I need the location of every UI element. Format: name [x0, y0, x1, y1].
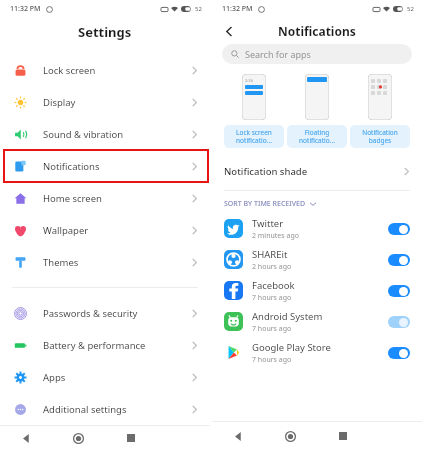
button[interactable]: Floating notificatio... [287, 74, 347, 148]
button[interactable]: Home screen [0, 182, 210, 214]
staticText: Facebook [252, 279, 295, 292]
button[interactable]: Additional settings [0, 393, 210, 425]
button[interactable]: Search for apps [222, 44, 412, 64]
staticText: Themes [43, 256, 79, 269]
button[interactable] [388, 316, 410, 328]
button[interactable]: Themes [0, 246, 210, 278]
staticText: 11:32 PM [10, 4, 41, 14]
button[interactable]: Lock screen [0, 54, 210, 86]
staticText: 52 [407, 5, 414, 13]
button[interactable]: Twitter [212, 213, 422, 244]
staticText: Display [43, 96, 76, 109]
staticText: Additional settings [43, 403, 127, 416]
staticText: SHAREit [252, 248, 288, 261]
staticText: Search for apps [245, 48, 311, 60]
staticText: Sound & vibration [43, 128, 124, 141]
staticText: Notifications [278, 23, 356, 39]
staticText: Google Play Store [252, 341, 331, 354]
button[interactable]: 2:36 [224, 74, 284, 148]
staticText: Notification shade [224, 165, 308, 178]
staticText: Floating notificatio... [299, 128, 335, 145]
button[interactable]: Notifications [0, 150, 210, 182]
staticText: Home screen [43, 192, 102, 205]
button[interactable] [388, 254, 410, 266]
staticText: 2 minutes ago [252, 231, 299, 241]
button[interactable]: Android System [212, 306, 422, 337]
button[interactable]: Home [264, 422, 316, 450]
staticText: 2:36 [245, 78, 253, 83]
button[interactable]: Google Play Store [212, 337, 422, 368]
staticText: Notifications [43, 160, 100, 173]
staticText: 7 hours ago [252, 293, 292, 303]
staticText: Lock screen notificatio... [236, 128, 272, 145]
button[interactable]: Back [212, 422, 264, 450]
button[interactable]: Notification shade [212, 158, 422, 184]
staticText: Notification badges [362, 128, 398, 145]
staticText: Twitter [252, 217, 284, 230]
button[interactable]: Battery & performance [0, 329, 210, 361]
button[interactable]: SORT BY TIME RECEIVED [224, 199, 410, 209]
staticText: Passwords & security [43, 307, 138, 320]
button[interactable]: Passwords & security [0, 297, 210, 329]
button[interactable]: Recents [104, 426, 157, 450]
button[interactable]: Back [0, 426, 52, 450]
staticText: 2 hours ago [252, 262, 292, 272]
button[interactable]: Facebook [212, 275, 422, 306]
button[interactable]: Back [220, 22, 238, 40]
staticText: Android System [252, 310, 323, 323]
staticText: Settings [78, 23, 132, 41]
staticText: 11:32 PM [222, 4, 253, 14]
staticText: 7 hours ago [252, 324, 292, 334]
staticText: Battery & performance [43, 339, 146, 352]
staticText: Apps [43, 371, 66, 384]
staticText: Lock screen [43, 64, 96, 77]
staticText: 52 [195, 5, 202, 13]
button[interactable]: SHAREit [212, 244, 422, 275]
button[interactable]: Notification badges [350, 74, 410, 148]
staticText: Wallpaper [43, 224, 89, 237]
button[interactable] [388, 223, 410, 235]
button[interactable]: Wallpaper [0, 214, 210, 246]
button[interactable]: Recents [316, 422, 369, 450]
button[interactable]: Home [52, 426, 104, 450]
button[interactable] [388, 347, 410, 359]
button[interactable]: Display [0, 86, 210, 118]
staticText: 7 hours ago [252, 355, 292, 365]
button[interactable]: Sound & vibration [0, 118, 210, 150]
button[interactable]: Apps [0, 361, 210, 393]
button[interactable] [388, 285, 410, 297]
staticText: SORT BY TIME RECEIVED [224, 199, 306, 209]
